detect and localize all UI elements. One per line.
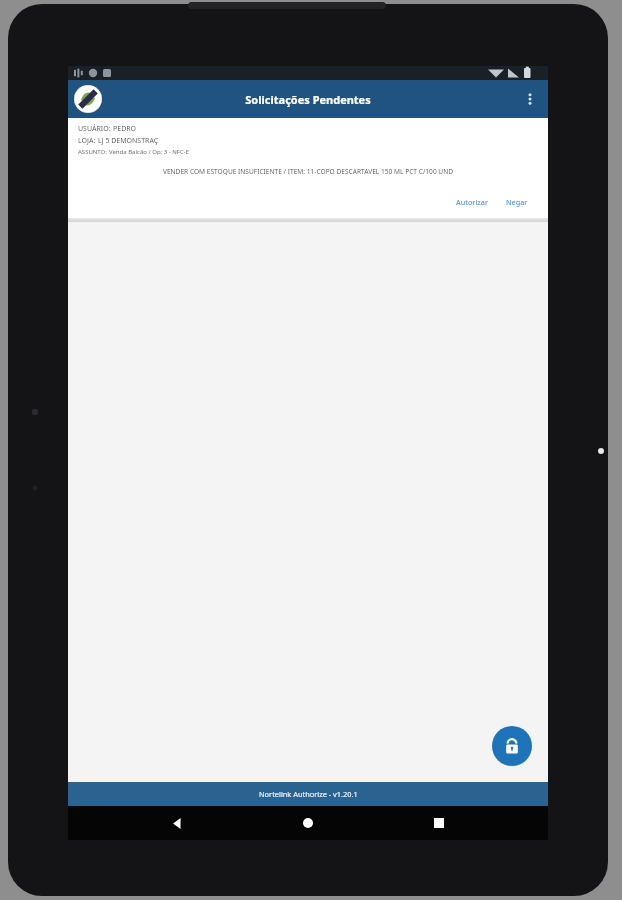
staticText: USUÁRIO: bbox=[78, 124, 113, 134]
button[interactable]: Lock bbox=[492, 726, 532, 766]
staticText: LJ 5 DEMONSTRAÇ bbox=[98, 136, 159, 146]
staticText: Negar bbox=[506, 197, 528, 207]
staticText: VENDER COM ESTOQUE INSUFICIENTE / ITEM: … bbox=[78, 167, 538, 176]
staticText: Venda Balcão / Op: 3 - NFC-E bbox=[109, 148, 189, 156]
button[interactable]: Back bbox=[155, 806, 199, 840]
button[interactable]: Home bbox=[286, 806, 330, 840]
button[interactable]: Recent apps bbox=[417, 806, 461, 840]
button[interactable]: Autorizar bbox=[450, 194, 494, 210]
button[interactable]: Negar bbox=[500, 194, 534, 210]
staticText: Autorizar bbox=[456, 197, 488, 207]
button[interactable]: More options bbox=[512, 81, 548, 117]
staticText: Solicitações Pendentes bbox=[245, 92, 371, 107]
staticText: PEDRO bbox=[113, 124, 137, 134]
button[interactable]: App logo bbox=[74, 85, 102, 113]
staticText: LOJA: bbox=[78, 136, 98, 146]
staticText: Nortelink Authorize - v1.20.1 bbox=[259, 789, 358, 799]
button[interactable]: USUÁRIO: bbox=[68, 118, 548, 218]
staticText: ASSUNTO: bbox=[78, 148, 109, 156]
